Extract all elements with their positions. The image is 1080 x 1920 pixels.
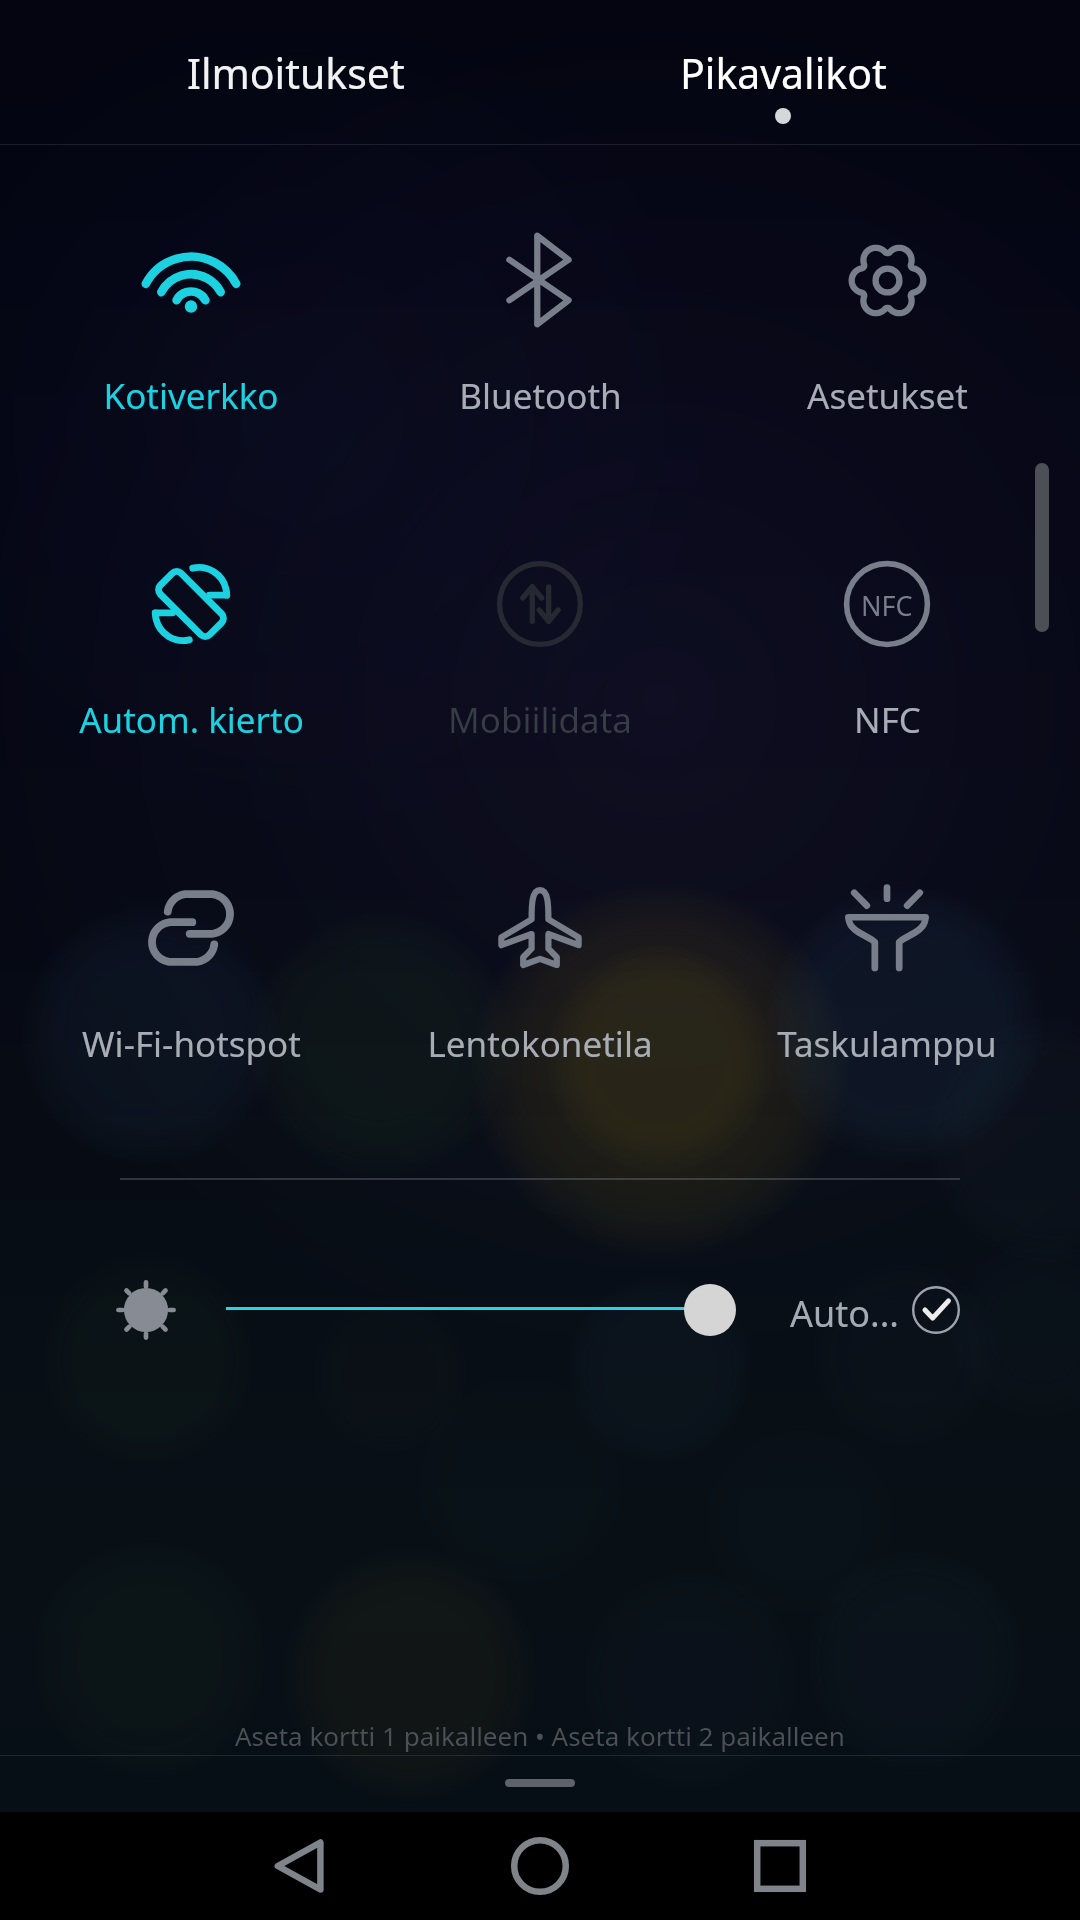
button[interactable]: Wi-Fi-hotspot <box>21 843 361 1074</box>
button[interactable]: Bluetooth <box>370 195 710 426</box>
button[interactable]: Kirkkaussäädin <box>210 1272 740 1348</box>
staticText: Kotiverkko <box>103 372 279 420</box>
staticText: Pikavalikot <box>680 45 887 101</box>
staticText: Mobiilidata <box>448 696 632 744</box>
button[interactable]: Autom. kierto <box>21 519 361 750</box>
button[interactable]: Viimeisimmät <box>720 1812 840 1920</box>
staticText: Autom. kierto <box>79 696 304 744</box>
button[interactable]: Mobiilidata <box>370 519 710 750</box>
staticText: Wi-Fi-hotspot <box>82 1020 301 1068</box>
staticText: Asetukset <box>807 372 968 420</box>
staticText: Aseta kortti 1 paikalleen • Aseta kortti… <box>235 1718 845 1753</box>
button[interactable]: Automaattinen kirkkaus <box>908 1282 964 1338</box>
staticText: Bluetooth <box>459 372 622 420</box>
staticText: Lentokonetila <box>427 1020 653 1068</box>
button[interactable]: NFC <box>717 519 1057 750</box>
staticText: Taskulamppu <box>777 1020 997 1068</box>
button[interactable]: Kotiverkko <box>21 195 361 426</box>
staticText: NFC <box>854 696 921 744</box>
button[interactable]: Taskulamppu <box>717 843 1057 1074</box>
staticText: NFC <box>861 587 913 624</box>
button[interactable]: Asetukset <box>717 195 1057 426</box>
button[interactable]: Kirkkaus <box>106 1270 186 1350</box>
staticText: Auto... <box>790 1289 899 1338</box>
button[interactable]: Pikavalikot <box>583 0 983 144</box>
button[interactable]: Ilmoitukset <box>96 0 496 144</box>
button[interactable]: Koti <box>480 1812 600 1920</box>
button[interactable]: Lentokonetila <box>370 843 710 1074</box>
staticText: Ilmoitukset <box>187 45 405 101</box>
button[interactable]: Takaisin <box>240 1812 360 1920</box>
